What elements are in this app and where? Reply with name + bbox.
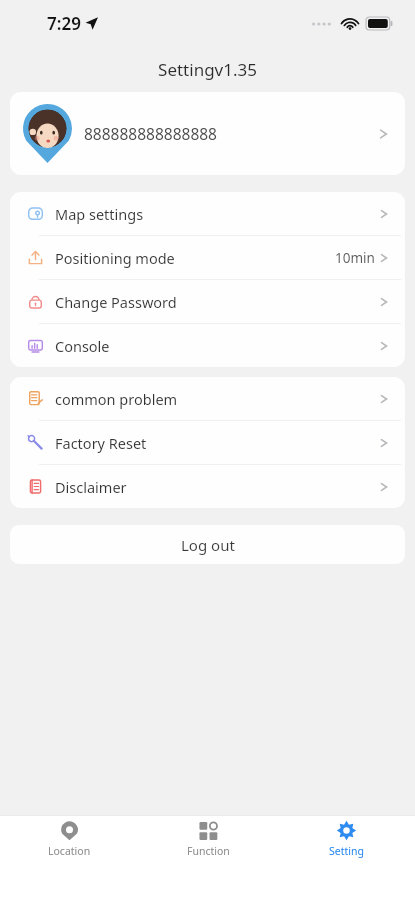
staticText: Log out (181, 535, 235, 555)
button[interactable]: Function (139, 816, 277, 866)
staticText: 888888888888888 (84, 123, 217, 144)
button[interactable]: Log out (10, 525, 405, 564)
staticText: Map settings (55, 204, 144, 224)
button[interactable]: Location (0, 816, 139, 866)
button[interactable]: Factory Reset (10, 421, 405, 464)
staticText: Function (187, 844, 230, 858)
button[interactable]: Setting (277, 816, 415, 866)
staticText: Setting (329, 844, 364, 858)
staticText: 7:29 (47, 12, 81, 35)
button[interactable]: Console (10, 324, 405, 367)
button[interactable]: Positioning mode (10, 236, 405, 279)
button[interactable]: Change Password (10, 280, 405, 323)
staticText: Disclaimer (55, 477, 127, 497)
staticText: Change Password (55, 292, 177, 312)
button[interactable]: 888888888888888 (10, 92, 405, 175)
staticText: Location (48, 844, 91, 858)
staticText: Positioning mode (55, 248, 175, 268)
staticText: Console (55, 336, 110, 356)
button[interactable]: Map settings (10, 192, 405, 235)
staticText: Settingv1.35 (158, 58, 257, 81)
staticText: common problem (55, 389, 178, 409)
staticText: Factory Reset (55, 433, 147, 453)
staticText: 10min (335, 249, 375, 267)
button[interactable]: common problem (10, 377, 405, 420)
button[interactable]: Disclaimer (10, 465, 405, 508)
